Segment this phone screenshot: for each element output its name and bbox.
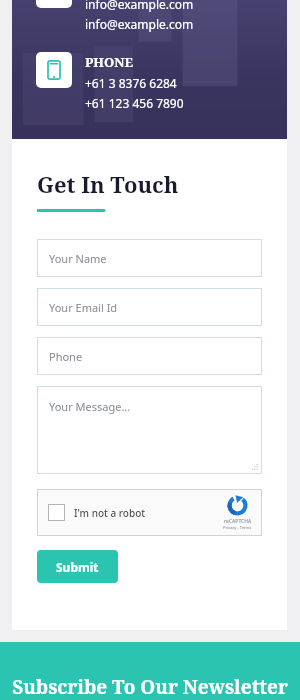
staticText: Submit bbox=[56, 559, 99, 575]
staticText: I'm not a robot bbox=[74, 506, 146, 520]
staticText: Your Name bbox=[49, 251, 107, 266]
staticText: Phone bbox=[49, 349, 83, 364]
staticText: Subscribe To Our Newsletter bbox=[12, 674, 288, 700]
button[interactable]: Email bbox=[36, 0, 287, 32]
button[interactable]: Your Name bbox=[37, 239, 262, 277]
staticText: Get In Touch bbox=[37, 169, 179, 199]
staticText: Your Email Id bbox=[49, 300, 118, 315]
button[interactable]: Phone bbox=[37, 337, 262, 375]
staticText: Your Message... bbox=[49, 399, 131, 414]
staticText: +61 123 456 7890 bbox=[85, 95, 184, 111]
staticText: PHONE bbox=[85, 53, 133, 71]
button[interactable]: I'm not a robot checkbox bbox=[37, 489, 262, 536]
button[interactable]: Phone bbox=[36, 52, 287, 111]
button[interactable]: Your Message... bbox=[37, 386, 262, 474]
button[interactable]: Submit bbox=[37, 550, 118, 583]
other: Phone bbox=[44, 60, 64, 80]
button[interactable]: Your Email Id bbox=[37, 288, 262, 326]
staticText: +61 3 8376 6284 bbox=[85, 75, 177, 91]
staticText: info@example.com bbox=[85, 16, 194, 32]
staticText: Privacy - Terms bbox=[223, 525, 252, 530]
staticText: reCAPTCHA bbox=[224, 518, 252, 525]
staticText: info@example.com bbox=[85, 0, 194, 12]
other: I'm not a robot checkbox bbox=[48, 504, 65, 521]
